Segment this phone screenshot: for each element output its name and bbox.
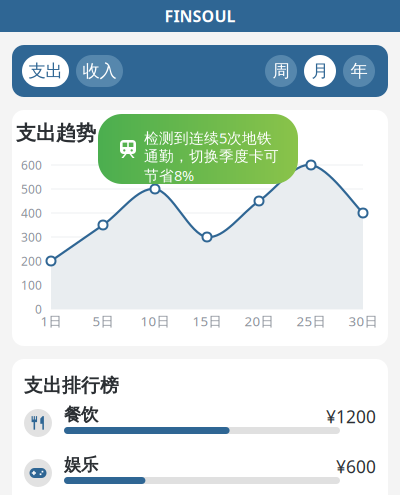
button[interactable]: 支出 — [22, 55, 69, 87]
staticText: 400 — [21, 205, 42, 221]
staticText: 1日 — [40, 312, 61, 330]
staticText: 200 — [21, 253, 42, 269]
button[interactable]: 收入 — [76, 55, 123, 87]
staticText: 支出趋势 — [16, 121, 96, 145]
staticText: 5日 — [92, 312, 113, 330]
staticText: 15日 — [192, 312, 221, 330]
staticText: 600 — [21, 157, 42, 173]
staticText: 支出排行榜 — [24, 374, 119, 397]
staticText: 10日 — [140, 312, 169, 330]
button[interactable]: 娱乐 — [12, 448, 388, 495]
staticText: 年 — [350, 60, 367, 82]
staticText: 0 — [35, 301, 42, 317]
button[interactable]: 年 — [343, 55, 375, 87]
staticText: 餐饮 — [64, 404, 98, 425]
button[interactable]: 月 — [304, 55, 336, 87]
staticText: ¥1200 — [326, 405, 376, 428]
staticText: FINSOUL — [164, 5, 235, 27]
staticText: ¥600 — [336, 455, 376, 478]
staticText: 25日 — [296, 312, 325, 330]
button[interactable]: 餐饮 — [12, 398, 388, 448]
staticText: 月 — [311, 60, 328, 82]
staticText: 100 — [21, 277, 42, 293]
staticText: 收入 — [82, 60, 116, 82]
staticText: 20日 — [244, 312, 273, 330]
staticText: 500 — [21, 181, 42, 197]
staticText: 周 — [272, 60, 289, 82]
button[interactable]: 周 — [265, 55, 297, 87]
staticText: 支出 — [28, 60, 62, 82]
staticText: 300 — [21, 229, 42, 245]
staticText: 检测到连续5次地铁通勤，切换季度卡可节省8% — [144, 128, 279, 185]
staticText: 娱乐 — [64, 454, 98, 475]
staticText: 30日 — [348, 312, 377, 330]
